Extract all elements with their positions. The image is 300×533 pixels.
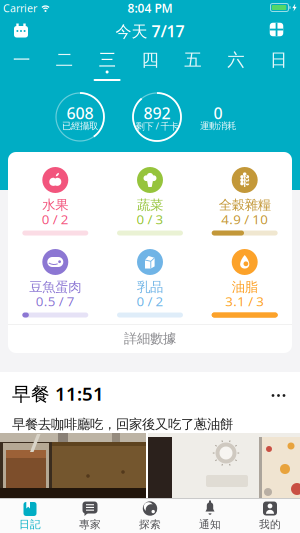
button[interactable]: 二 xyxy=(43,49,86,71)
staticText: 我的 xyxy=(259,518,281,531)
staticText: 一 xyxy=(13,49,30,71)
staticText: Carrier xyxy=(3,1,37,15)
staticText: 0 / 3 xyxy=(136,210,163,228)
staticText: 探索 xyxy=(139,518,161,531)
staticText: 水果 xyxy=(42,197,68,213)
staticText: 已經攝取 xyxy=(62,120,98,132)
staticText: 六 xyxy=(227,49,244,71)
staticText: 3.1 / 3 xyxy=(225,292,264,310)
staticText: 蔬菜 xyxy=(137,197,163,213)
button[interactable]: 六 xyxy=(214,49,257,71)
button[interactable]: More options xyxy=(267,389,291,401)
staticText: 三 xyxy=(99,49,116,71)
staticText: 0 / 2 xyxy=(136,292,163,310)
button[interactable]: 專家 xyxy=(62,498,118,533)
staticText: 二 xyxy=(56,49,73,71)
staticText: 四 xyxy=(141,49,158,71)
staticText: 0.5 / 7 xyxy=(36,292,75,310)
staticText: 0 xyxy=(213,102,222,124)
button[interactable]: 四 xyxy=(129,49,171,71)
staticText: 0 / 2 xyxy=(42,210,69,228)
button[interactable]: 一 xyxy=(0,49,43,71)
button[interactable]: 日 xyxy=(257,49,300,71)
staticText: 通知 xyxy=(199,518,221,531)
staticText: 剩下 / 千卡 xyxy=(135,120,178,132)
staticText: 608 xyxy=(66,102,93,124)
staticText: 油脂 xyxy=(232,279,258,295)
button[interactable]: Calendar xyxy=(7,17,35,45)
staticText: 全穀雜糧 xyxy=(219,197,271,213)
button[interactable]: Add xyxy=(270,23,283,36)
staticText: 詳細數據 xyxy=(124,330,176,347)
staticText: 早餐 11:51 xyxy=(12,381,104,406)
staticText: 日記 xyxy=(19,518,41,531)
button[interactable]: 三 xyxy=(86,49,129,71)
staticText: 專家 xyxy=(79,518,101,531)
staticText: 日 xyxy=(270,49,287,71)
button[interactable]: 日記 xyxy=(2,498,58,533)
button[interactable]: 探索 xyxy=(122,498,178,533)
button[interactable]: 詳細數據 xyxy=(8,324,292,352)
staticText: 今天 7/17 xyxy=(115,20,184,42)
staticText: 4.9 / 10 xyxy=(221,210,268,228)
staticText: 五 xyxy=(184,49,201,71)
staticText: 豆魚蛋肉 xyxy=(29,279,81,295)
staticText: 892 xyxy=(143,102,170,124)
staticText: 早餐去咖啡廳吃，回家後又吃了蔥油餅 xyxy=(12,416,233,432)
button[interactable]: 我的 xyxy=(242,498,298,533)
staticText: 運動消耗 xyxy=(200,120,236,132)
staticText: 8:04 PM xyxy=(127,0,172,16)
button[interactable]: 通知 xyxy=(182,498,238,533)
staticText: 乳品 xyxy=(137,279,163,295)
button[interactable]: 五 xyxy=(171,49,214,71)
